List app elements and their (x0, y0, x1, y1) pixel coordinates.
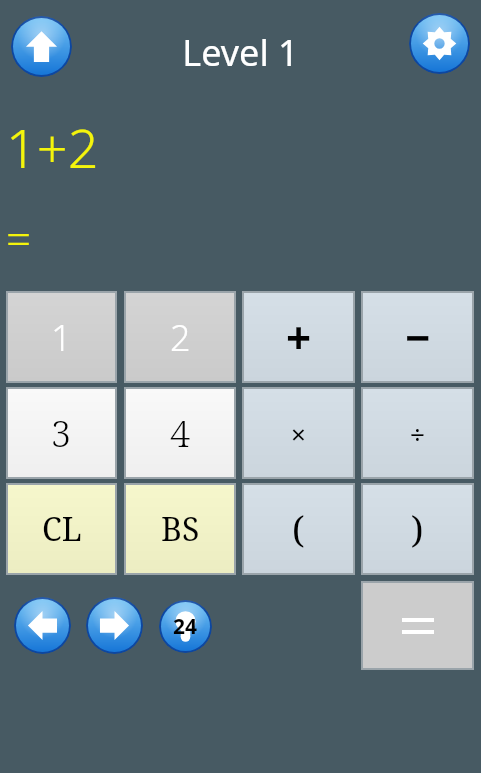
staticText: − (405, 307, 431, 367)
staticText: × (291, 416, 306, 451)
button[interactable]: 2 (126, 293, 234, 381)
button[interactable]: × (244, 389, 353, 477)
button[interactable]: ) (363, 485, 472, 573)
staticText: ) (411, 505, 424, 554)
staticText: 4 (170, 409, 191, 458)
button[interactable]: ÷ (363, 389, 472, 477)
button[interactable]: + (244, 293, 353, 381)
staticText: ÷ (410, 416, 425, 451)
button[interactable]: 1 (8, 293, 115, 381)
button[interactable]: Up (11, 16, 72, 77)
button[interactable]: Hint, 24 remaining (159, 600, 212, 653)
staticText: BS (161, 507, 200, 551)
staticText: 1 (51, 313, 72, 362)
staticText: 2 (170, 313, 191, 362)
button[interactable]: Next (86, 597, 143, 654)
button[interactable]: 4 (126, 389, 234, 477)
staticText: 3 (51, 409, 72, 458)
staticText: 1+2 (6, 110, 99, 184)
staticText: ( (292, 505, 305, 554)
button[interactable]: Settings (409, 13, 470, 74)
staticText: Level 1 (0, 28, 481, 77)
button[interactable]: 3 (8, 389, 115, 477)
button[interactable]: Equals (363, 583, 472, 668)
button[interactable]: ( (244, 485, 353, 573)
staticText: 24 (173, 612, 198, 641)
button[interactable]: − (363, 293, 472, 381)
button[interactable]: CL (8, 485, 115, 573)
button[interactable]: BS (126, 485, 234, 573)
staticText: CL (42, 507, 82, 551)
staticText: = (6, 208, 32, 268)
button[interactable]: Previous (14, 597, 71, 654)
staticText: + (286, 307, 312, 367)
